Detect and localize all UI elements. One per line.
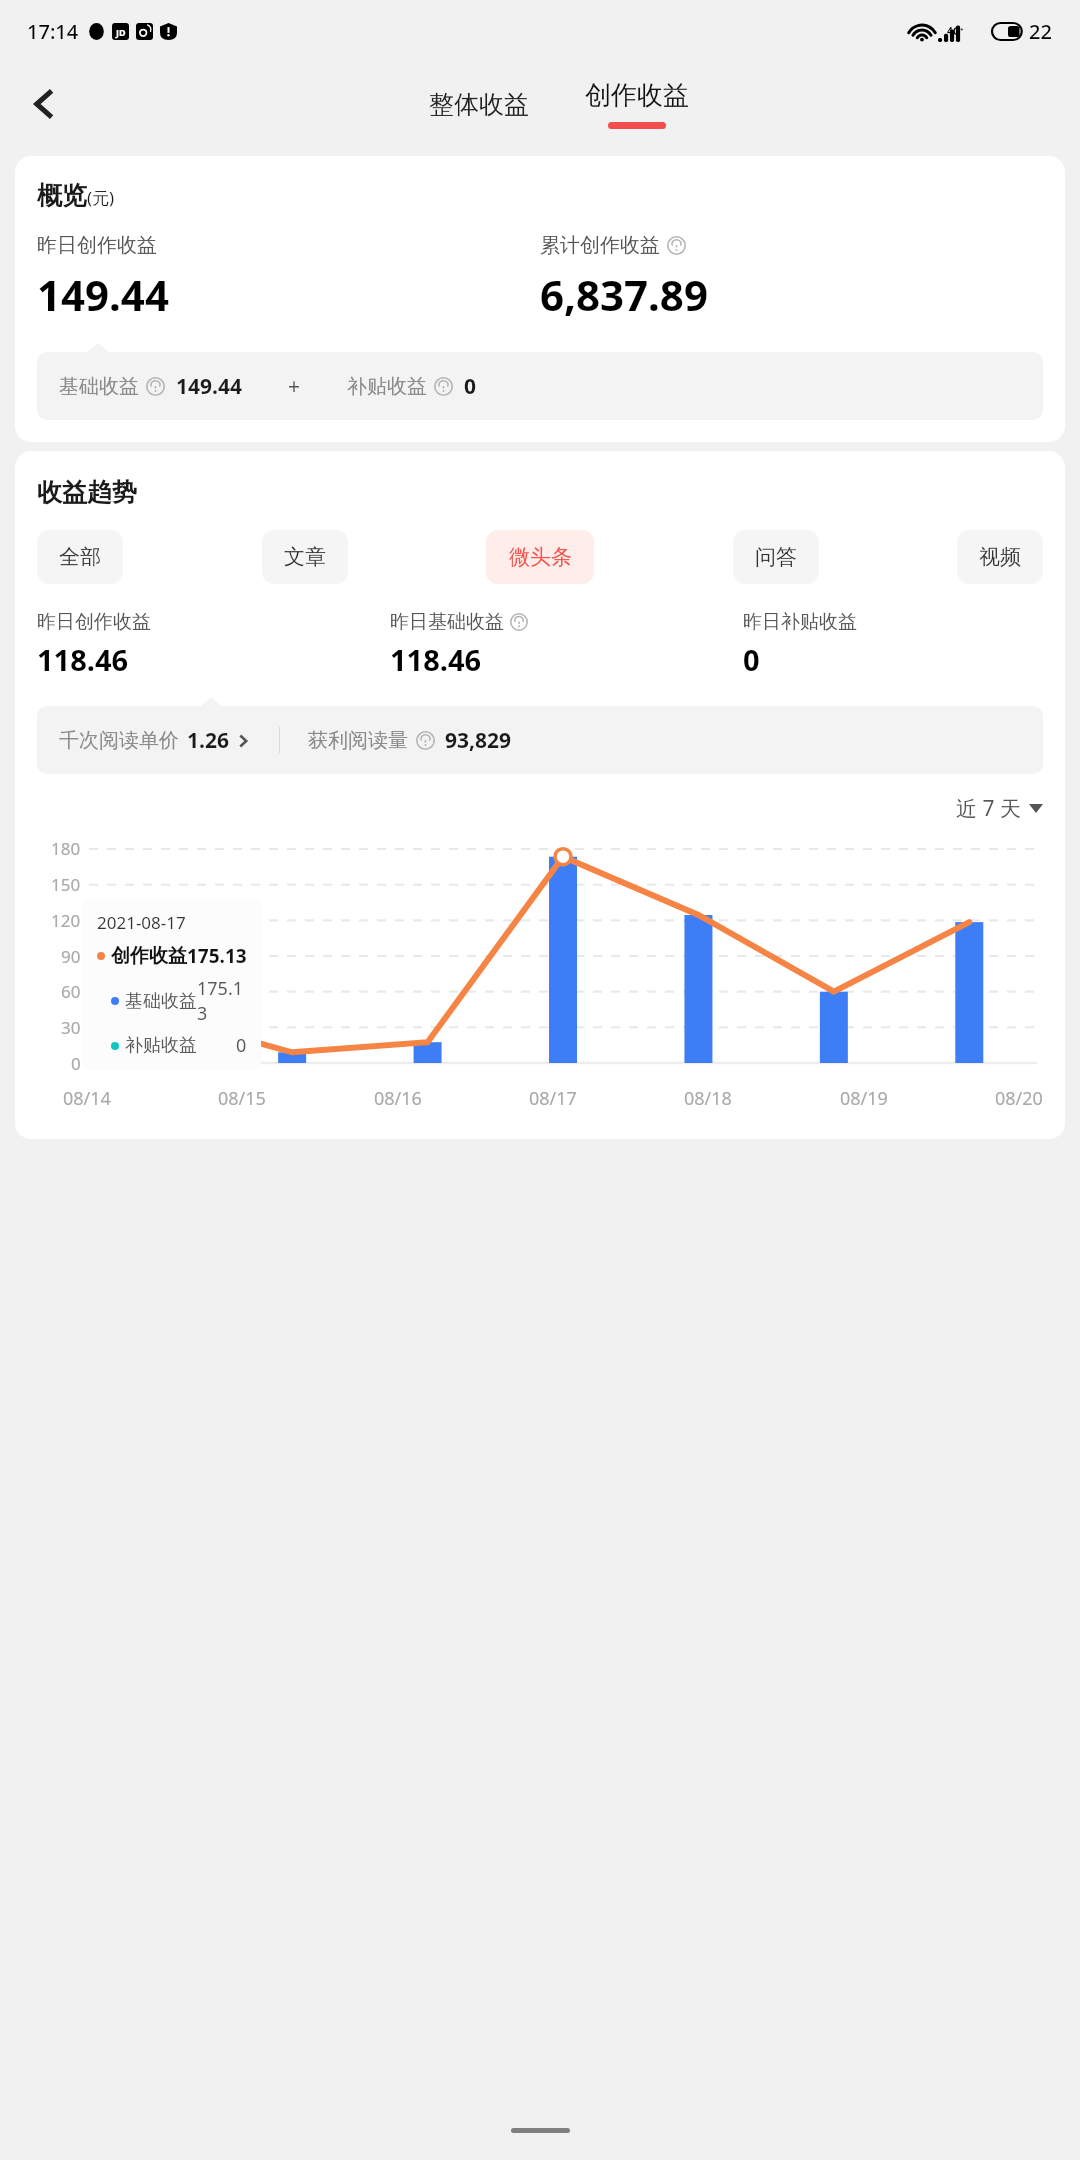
button[interactable]: Back [14, 74, 74, 134]
button[interactable]: 微头条 [486, 530, 594, 584]
staticText: 118.46 [390, 640, 482, 679]
staticText: (元) [87, 186, 115, 209]
staticText: 0 [71, 1052, 81, 1075]
staticText: 创作收益 [585, 79, 689, 112]
staticText: 获利阅读量 [308, 728, 408, 753]
staticText: 文章 [284, 544, 326, 570]
staticText: 2021-08-17 [97, 911, 186, 934]
staticText: 93,829 [445, 726, 512, 755]
button[interactable]: 文章 [262, 530, 348, 584]
staticText: 0 [236, 1033, 247, 1058]
staticText: 120 [51, 909, 81, 932]
staticText: 175.13 [197, 976, 247, 1026]
staticText: 问答 [755, 544, 797, 570]
staticText: 1.26 [187, 726, 229, 755]
staticText: 08/17 [529, 1086, 577, 1111]
staticText: 08/19 [840, 1086, 888, 1111]
staticText: 视频 [979, 544, 1021, 570]
staticText: 08/14 [63, 1086, 111, 1111]
button[interactable]: 近 7 天 [37, 794, 1043, 823]
staticText: 昨日补贴收益 [743, 610, 857, 634]
staticText: 0 [743, 640, 760, 679]
staticText: 149.44 [37, 266, 169, 323]
staticText: 全部 [59, 544, 101, 570]
button[interactable]: 全部 [37, 530, 123, 584]
staticText: 补贴收益 [125, 1034, 197, 1057]
staticText: 22 [1029, 18, 1052, 45]
staticText: 基础收益 [59, 374, 139, 399]
staticText: 60 [61, 980, 81, 1003]
staticText: 近 7 天 [956, 794, 1021, 823]
staticText: 整体收益 [429, 89, 529, 120]
staticText: 118.46 [37, 640, 129, 679]
staticText: 累计创作收益 [540, 233, 660, 258]
button[interactable]: 视频 [957, 530, 1043, 584]
staticText: 149.44 [176, 372, 242, 401]
staticText: 千次阅读单价 [59, 728, 179, 753]
staticText: 08/16 [374, 1086, 422, 1111]
staticText: 4G⁺ [947, 24, 964, 38]
staticText: 基础收益 [125, 990, 197, 1013]
staticText: 08/18 [684, 1086, 732, 1111]
staticText: 30 [61, 1016, 81, 1039]
button[interactable]: 创作收益 [571, 75, 703, 133]
staticText: 收益趋势 [37, 477, 137, 508]
staticText: 08/15 [218, 1086, 266, 1111]
staticText: 昨日创作收益 [37, 233, 157, 258]
button[interactable]: 问答 [733, 530, 819, 584]
staticText: 90 [61, 945, 81, 968]
staticText: 17:14 [27, 18, 79, 45]
staticText: 175.13 [187, 943, 247, 969]
staticText: 概览 [37, 180, 87, 211]
staticText: JD [116, 26, 126, 38]
staticText: + [288, 372, 301, 401]
staticText: 微头条 [509, 544, 572, 570]
staticText: 创作收益 [111, 944, 187, 968]
staticText: 180 [51, 837, 81, 860]
button[interactable]: 千次阅读单价 [59, 726, 251, 755]
staticText: 6,837.89 [540, 266, 708, 323]
staticText: 昨日创作收益 [37, 610, 151, 634]
staticText: 0 [464, 372, 477, 401]
button[interactable]: 整体收益 [415, 81, 543, 128]
staticText: 补贴收益 [347, 374, 427, 399]
staticText: 08/20 [995, 1086, 1043, 1111]
staticText: 昨日基础收益 [390, 610, 504, 634]
staticText: 150 [51, 873, 81, 896]
